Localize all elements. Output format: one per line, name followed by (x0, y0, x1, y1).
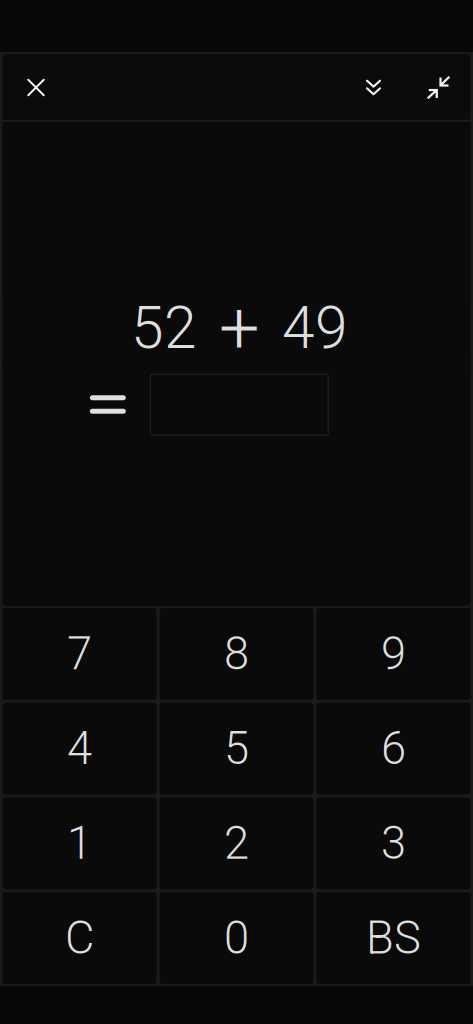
staticText: 6 (381, 722, 406, 775)
button[interactable]: C (2, 892, 156, 984)
staticText: 1 (67, 817, 92, 870)
staticText: 2 (224, 817, 249, 870)
button[interactable]: BS (316, 892, 470, 984)
staticText: 52 (131, 294, 197, 362)
button[interactable]: 7 (2, 608, 156, 700)
button[interactable]: 8 (159, 608, 313, 700)
staticText: 49 (282, 294, 348, 362)
staticText: 3 (381, 817, 406, 870)
button[interactable]: 6 (316, 703, 470, 795)
staticText: + (219, 286, 260, 370)
staticText: BS (366, 912, 421, 965)
staticText: 8 (224, 627, 249, 680)
button[interactable]: 4 (2, 703, 156, 795)
button[interactable]: 5 (159, 703, 313, 795)
button[interactable]: 1 (2, 797, 156, 889)
staticText: C (65, 912, 94, 965)
button[interactable]: 2 (159, 797, 313, 889)
button[interactable]: Close (12, 61, 60, 113)
staticText: 7 (67, 627, 92, 680)
staticText: 0 (224, 912, 249, 965)
staticText: 9 (381, 627, 406, 680)
staticText: 4 (67, 722, 92, 775)
button[interactable]: Next question (350, 61, 396, 113)
staticText: 5 (224, 722, 249, 775)
button[interactable]: Collapse keypad (415, 61, 461, 113)
button[interactable]: 3 (316, 797, 470, 889)
button[interactable]: 0 (159, 892, 313, 984)
button[interactable]: Answer (150, 374, 328, 435)
button[interactable]: 9 (316, 608, 470, 700)
